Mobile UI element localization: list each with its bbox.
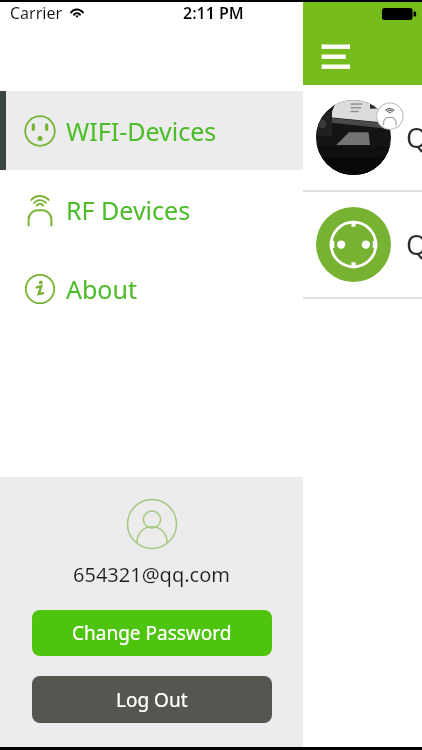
staticText: Log Out xyxy=(116,687,188,713)
staticText: 654321@qq.com xyxy=(73,561,230,588)
button[interactable]: QQQQQ xyxy=(303,192,422,297)
staticText: Carrier xyxy=(10,2,63,24)
staticText: Change Password xyxy=(72,620,232,646)
staticText: 2:11 PM xyxy=(183,2,244,24)
staticText: QQQQQ xyxy=(406,226,422,263)
button[interactable]: Menu xyxy=(303,0,422,85)
button[interactable]: Change Password xyxy=(32,610,272,656)
button[interactable]: QQQQQ xyxy=(303,85,422,190)
staticText: WIFI-Devices xyxy=(66,114,217,148)
button[interactable]: RF Devices xyxy=(0,170,303,249)
button[interactable]: Log Out xyxy=(32,676,272,723)
button[interactable]: WIFI-Devices xyxy=(0,91,303,170)
staticText: About xyxy=(66,272,137,306)
staticText: RF Devices xyxy=(66,193,191,227)
button[interactable]: About xyxy=(0,249,303,328)
staticText: QQQQQ xyxy=(406,119,422,156)
